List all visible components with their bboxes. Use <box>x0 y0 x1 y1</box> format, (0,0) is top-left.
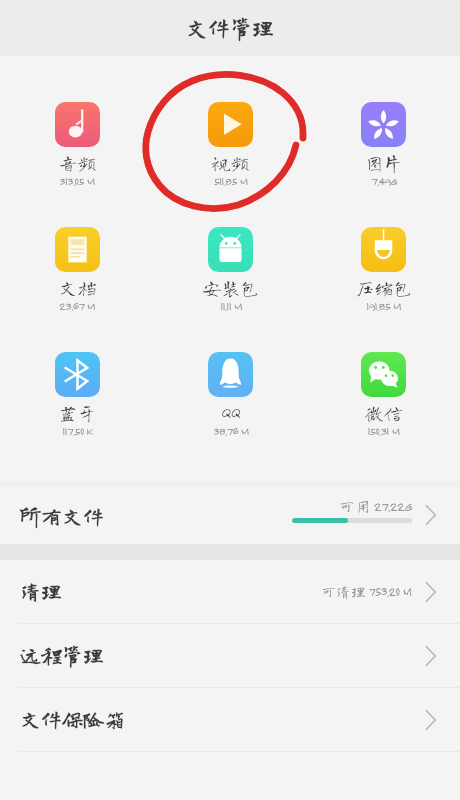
staticText: 压缩包 <box>355 278 413 297</box>
staticText: 文件保险箱 <box>20 709 125 730</box>
staticText: 视频 <box>211 153 250 172</box>
staticText: QQ <box>221 403 240 422</box>
button[interactable]: 清理 <box>0 560 460 623</box>
staticText: 所有文件 <box>20 506 104 527</box>
staticText: 313.05 M <box>59 174 95 188</box>
staticText: 191.85 M <box>366 299 401 313</box>
button[interactable]: 所有文件 <box>0 486 460 544</box>
staticText: 23.67 M <box>59 299 95 313</box>
staticText: 安装包 <box>202 278 260 297</box>
button[interactable]: 图片 <box>307 102 460 188</box>
staticText: 蓝牙 <box>58 403 97 422</box>
button[interactable]: 安装包 <box>154 227 307 313</box>
staticText: 117.50 K <box>62 424 93 438</box>
staticText: 微信 <box>364 403 403 422</box>
button[interactable]: 远程管理 <box>0 624 460 687</box>
staticText: 远程管理 <box>20 645 104 666</box>
staticText: 可用 27.22G <box>339 498 412 514</box>
staticText: 11.11 M <box>220 299 242 313</box>
staticText: 文件管理 <box>186 17 275 39</box>
staticText: 7.49G <box>371 174 397 188</box>
other: 所有文件 <box>419 504 441 526</box>
button[interactable]: 压缩包 <box>307 227 460 313</box>
button[interactable]: 音频 <box>0 102 154 188</box>
staticText: 图片 <box>364 153 403 172</box>
staticText: 文档 <box>58 278 97 297</box>
button[interactable]: 微信 <box>307 352 460 438</box>
staticText: 150.31 M <box>367 424 400 438</box>
button[interactable]: 蓝牙 <box>0 352 154 438</box>
button[interactable]: QQ <box>154 352 307 438</box>
staticText: 可清理 753.20 M <box>321 584 412 599</box>
button[interactable]: 视频 <box>154 102 307 188</box>
staticText: 511.85 M <box>213 174 248 188</box>
staticText: 38.76 M <box>213 424 249 438</box>
staticText: 音频 <box>58 153 97 172</box>
button[interactable]: 文件保险箱 <box>0 688 460 751</box>
staticText: 清理 <box>20 581 62 602</box>
button[interactable]: 文档 <box>0 227 154 313</box>
